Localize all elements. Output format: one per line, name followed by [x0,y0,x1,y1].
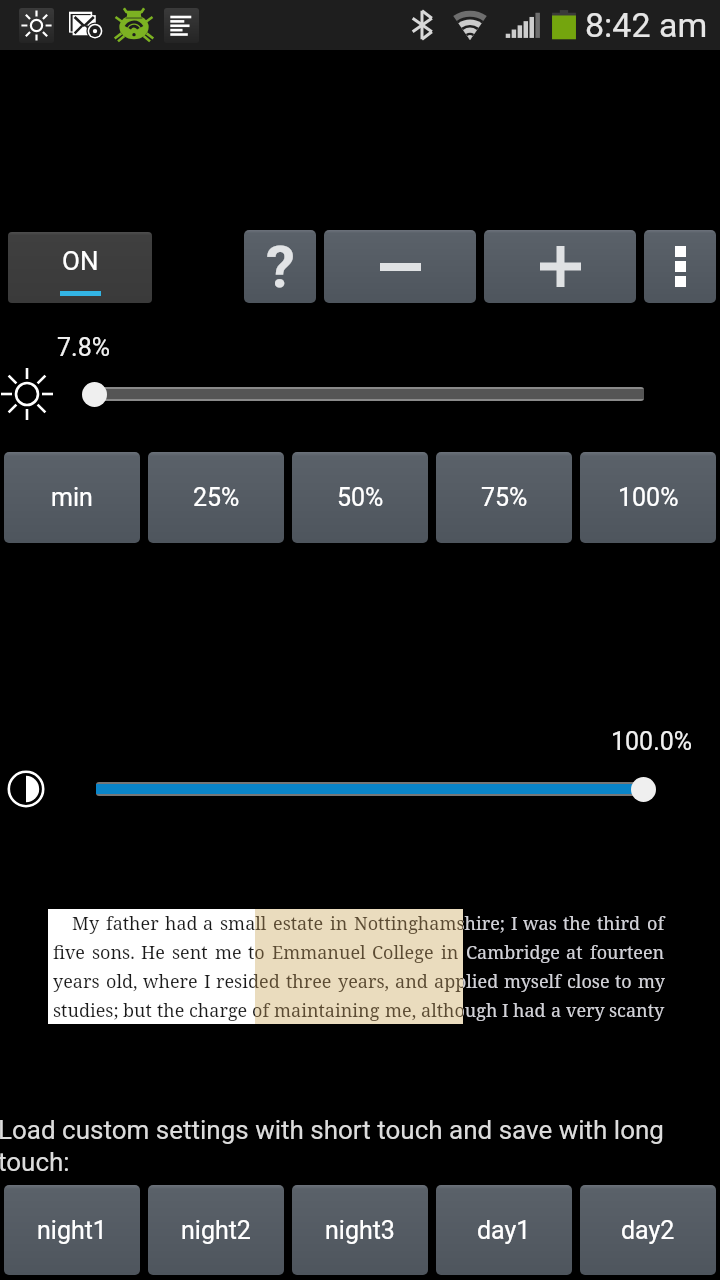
staticText: min [51,483,93,512]
staticText: was [523,911,557,936]
button[interactable]: night2 [148,1185,284,1275]
staticText: applied [434,969,499,994]
staticText: close [567,969,610,994]
staticText: 100% [618,483,679,512]
staticText: to [248,940,265,965]
staticText: and [395,969,428,994]
staticText: Cambridge [466,940,560,965]
staticText: charge [189,998,248,1023]
button[interactable]: More options [644,230,716,303]
staticText: 50% [337,483,384,512]
staticText: a [551,998,562,1023]
button[interactable]: day2 [580,1185,716,1275]
staticText: in [330,911,348,936]
staticText: although [421,998,498,1023]
staticText: the [563,911,591,936]
staticText: small [220,911,267,936]
staticText: charge [189,998,248,1023]
staticText: 100.0% [611,727,693,756]
staticText: my [638,969,665,994]
button[interactable]: min [4,452,140,543]
staticText: I [502,998,509,1023]
staticText: of [647,911,665,936]
staticText: scanty [609,998,665,1023]
staticText: ? [266,233,295,301]
staticText: night3 [325,1216,395,1245]
button[interactable]: 75% [436,452,572,543]
staticText: sons. [92,940,135,965]
staticText: day1 [477,1216,531,1245]
staticText: I [204,969,211,994]
staticText: maintaining [274,998,380,1023]
button[interactable]: ON [8,232,152,303]
staticText: very [566,998,605,1023]
staticText: of [252,998,270,1023]
staticText: three [286,969,332,994]
staticText: Cambridge [466,940,560,965]
staticText: applied [434,969,499,994]
staticText: resided [216,969,280,994]
staticText: years [53,969,100,994]
staticText: sons. [92,940,135,965]
staticText: 25% [193,483,240,512]
staticText: years, [338,969,390,994]
other: Brightness [1,368,53,420]
staticText: the [157,998,185,1023]
button[interactable]: Decrease [324,230,476,303]
button[interactable]: Increase [484,230,636,303]
staticText: to [248,940,265,965]
button[interactable]: night1 [4,1185,140,1275]
staticText: where [143,969,198,994]
staticText: years [53,969,100,994]
other: Contrast [6,769,46,809]
staticText: College [372,940,434,965]
button[interactable]: 25% [148,452,284,543]
staticText: had [165,911,198,936]
staticText: was [523,911,557,936]
staticText: of [252,998,270,1023]
staticText: father [106,911,159,936]
staticText: my [638,969,665,994]
staticText: had [513,998,546,1023]
staticText: fourteen [590,940,665,965]
staticText: fourteen [590,940,665,965]
staticText: Emmanuel [272,940,366,965]
staticText: I [204,969,211,994]
staticText: me, [385,998,417,1023]
staticText: studies; [53,998,119,1023]
staticText: years, [338,969,390,994]
staticText: small [220,911,267,936]
staticText: I [511,911,518,936]
staticText: old, [106,969,138,994]
staticText: a [551,998,562,1023]
staticText: five [53,940,85,965]
staticText: day2 [621,1216,675,1245]
staticText: in [330,911,348,936]
staticText: years [53,969,100,994]
staticText: in [441,940,459,965]
staticText: three [286,969,332,994]
staticText: sent [172,940,208,965]
staticText: sent [172,940,208,965]
staticText: Nottinghamshire; [354,911,505,936]
staticText: night2 [181,1216,251,1245]
staticText: third [597,911,641,936]
button[interactable]: Help [244,230,316,303]
staticText: scanty [609,998,665,1023]
staticText: five [53,940,85,965]
button[interactable]: night3 [292,1185,428,1275]
button[interactable]: day1 [436,1185,572,1275]
staticText: Nottinghamshire; [354,911,505,936]
staticText: a [551,998,562,1023]
staticText: me [215,940,242,965]
staticText: He [141,940,165,965]
button[interactable]: 50% [292,452,428,543]
staticText: old, [106,969,138,994]
staticText: father [106,911,159,936]
staticText: to [615,969,632,994]
staticText: to [248,940,265,965]
staticText: the [563,911,591,936]
button[interactable]: 100% [580,452,716,543]
staticText: 75% [481,483,528,512]
staticText: College [372,940,434,965]
